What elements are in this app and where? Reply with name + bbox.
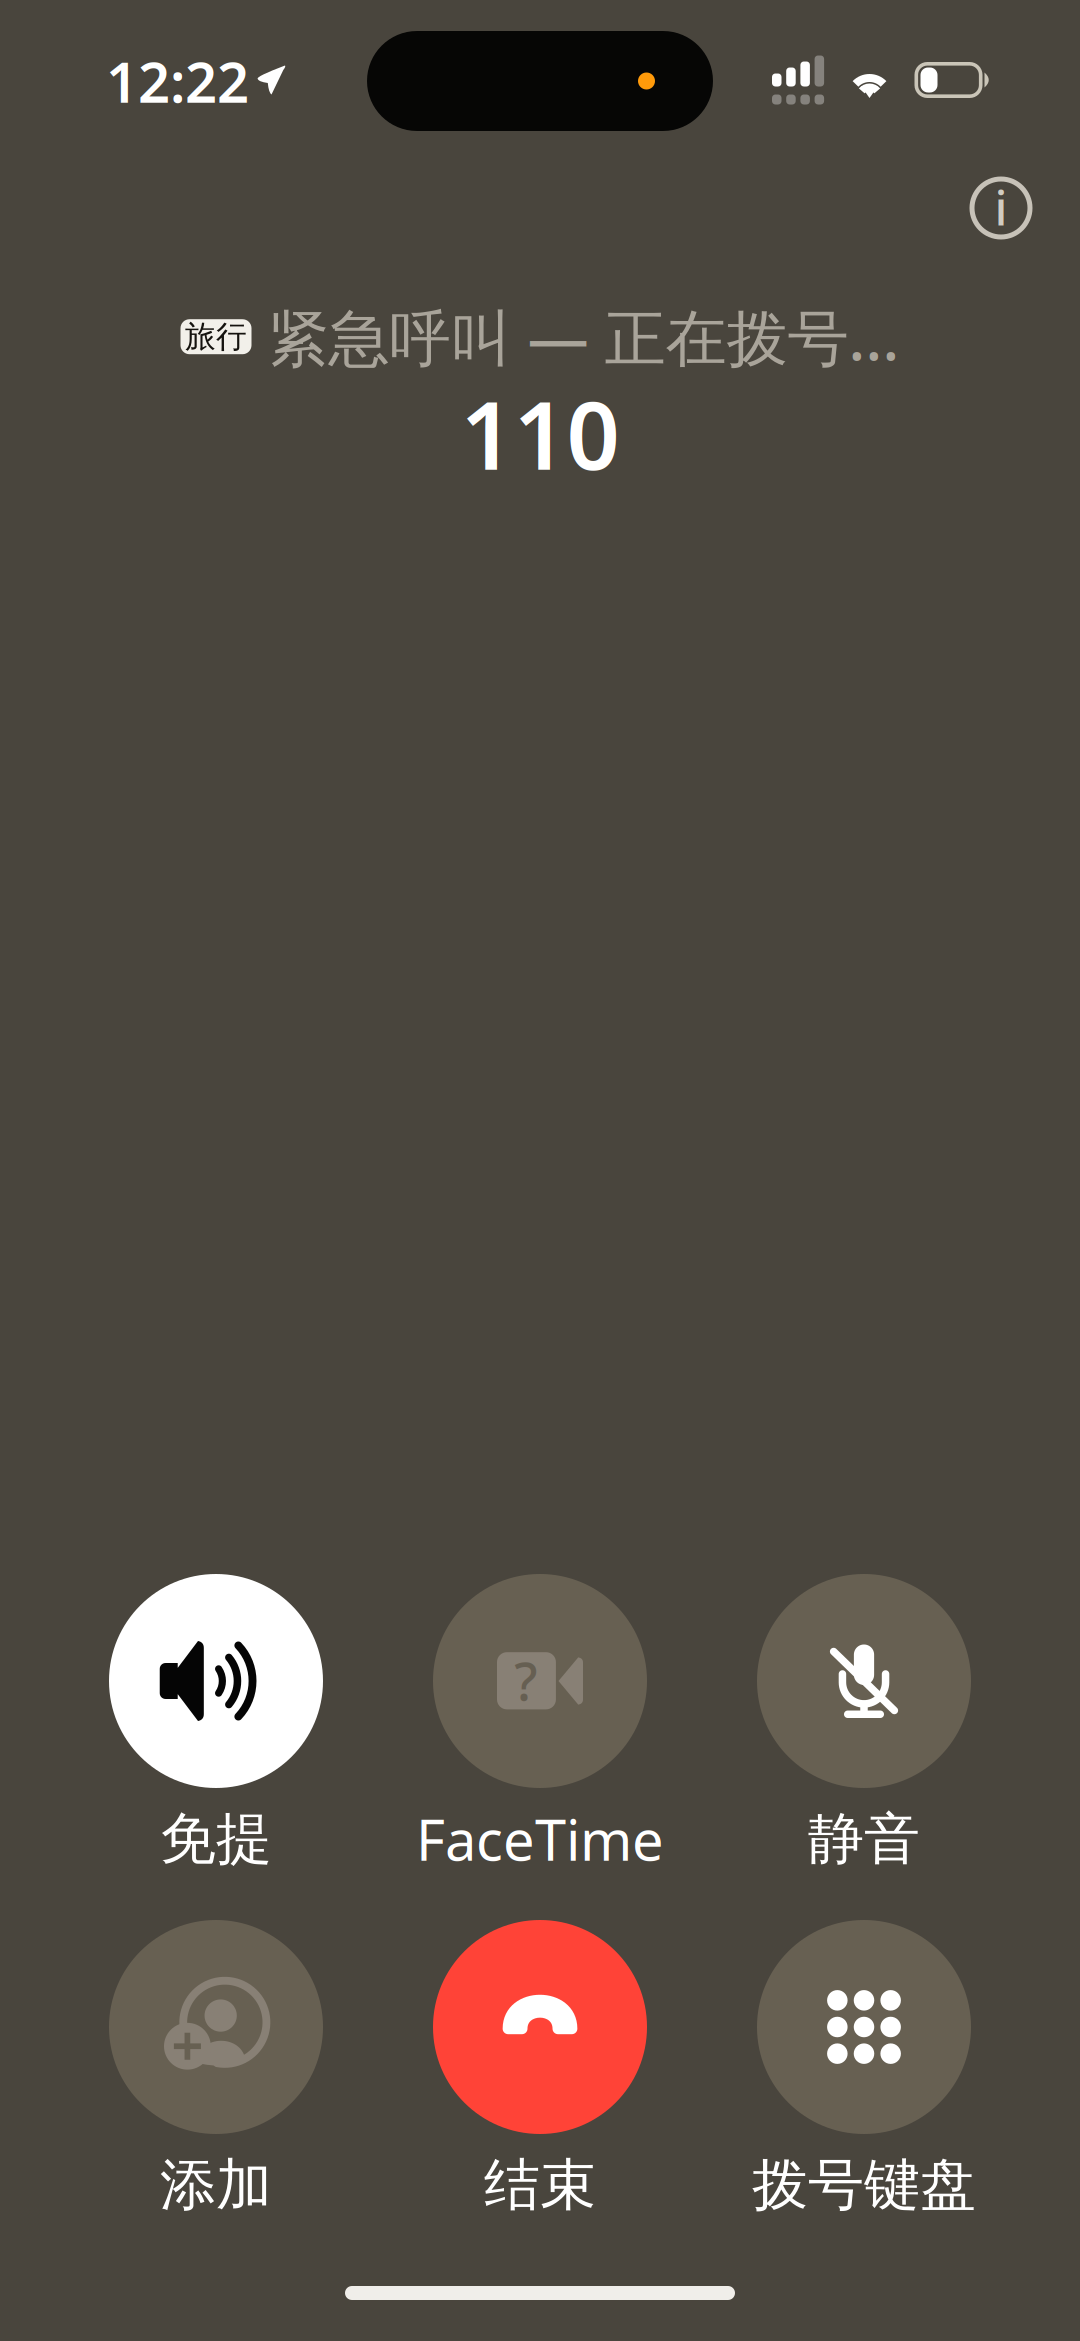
staticText: 12:22	[106, 44, 249, 118]
button[interactable]: 免提	[109, 1574, 323, 1788]
button[interactable]: 静音	[757, 1574, 971, 1788]
staticText: 免提	[160, 1805, 272, 1873]
staticText: 110	[460, 371, 619, 495]
button[interactable]: 结束	[433, 1920, 647, 2134]
button[interactable]: Info	[957, 164, 1045, 252]
staticText: ?	[514, 1646, 537, 1715]
staticText: FaceTime	[416, 1802, 664, 1876]
staticText: 拨号键盘	[752, 2151, 976, 2219]
button[interactable]: FaceTime	[433, 1574, 647, 1788]
button[interactable]: 拨号键盘	[757, 1920, 971, 2134]
staticText: 结束	[484, 2151, 596, 2219]
staticText: 静音	[808, 1805, 920, 1873]
staticText: 添加	[160, 2151, 272, 2219]
staticText: 旅行	[185, 318, 247, 356]
staticText: i	[994, 175, 1007, 239]
button[interactable]: 添加	[109, 1920, 323, 2134]
staticText: 紧急呼叫 — 正在拨号...	[267, 296, 899, 377]
